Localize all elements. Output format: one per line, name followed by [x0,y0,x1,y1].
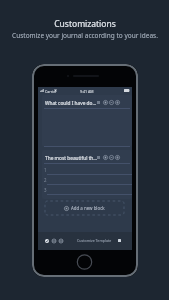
button[interactable]: Option 1 [102,99,108,105]
button[interactable]: Tool 1 [43,237,50,244]
staticText: 3 [44,187,47,193]
staticText: Customize your journal according to your… [12,31,158,40]
button[interactable]: Option 2 [108,99,114,105]
staticText: Add a new block [71,205,105,211]
staticText: The most beautiful th... [45,155,98,162]
staticText: Customize Template [77,238,112,243]
button[interactable]: Option 1 [102,154,108,160]
staticText: 9:41 AM [80,89,94,94]
button[interactable]: Reorder [96,100,101,105]
button[interactable]: Reorder [96,155,101,160]
staticText: Carrier [45,89,57,94]
button[interactable]: Option 3 [114,99,120,105]
button[interactable]: Tool 2 [50,237,57,244]
staticText: Customizations [54,18,116,30]
staticText: 1 [44,167,47,173]
button[interactable]: Toggle [118,239,121,242]
staticText: 2 [44,177,47,183]
button[interactable]: Add a new block [45,201,124,215]
button[interactable]: Option 3 [114,154,120,160]
staticText: What could I have do... [45,100,97,107]
button[interactable]: What could I have do... [42,95,132,147]
button[interactable]: Tool 3 [57,237,64,244]
button[interactable]: The most beautiful th... [42,150,132,199]
button[interactable]: Option 2 [108,154,114,160]
